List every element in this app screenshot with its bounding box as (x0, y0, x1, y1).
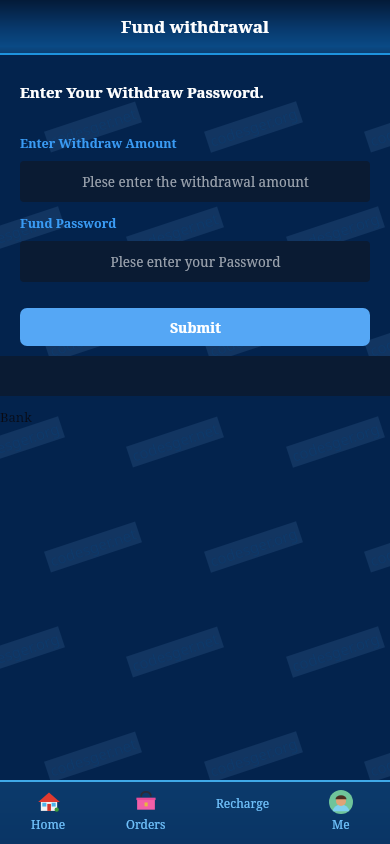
staticText: Me (332, 816, 350, 832)
staticText: Home (31, 816, 66, 832)
button[interactable]: Recharge (194, 782, 292, 844)
staticText: Fund Password (20, 215, 117, 232)
button[interactable]: Me (292, 782, 390, 844)
staticText: Plese enter your Password (110, 253, 281, 271)
other: Orders (134, 790, 158, 814)
other: Me (329, 790, 353, 814)
button[interactable]: Home (0, 782, 97, 844)
staticText: Fund withdrawal (121, 15, 269, 38)
staticText: Recharge (216, 795, 270, 811)
staticText: Enter Withdraw Amount (20, 135, 177, 152)
staticText: Plese enter the withdrawal amount (82, 173, 309, 191)
button[interactable]: Submit (20, 308, 370, 346)
button[interactable]: Orders (97, 782, 194, 844)
button[interactable]: Plese enter your Password (20, 241, 370, 282)
staticText: Submit (170, 318, 221, 337)
other: Home (37, 790, 61, 814)
staticText: Enter Your Withdraw Password. (20, 82, 264, 102)
staticText: Bank (0, 408, 32, 426)
staticText: Orders (126, 816, 166, 832)
button[interactable]: Plese enter the withdrawal amount (20, 161, 370, 202)
